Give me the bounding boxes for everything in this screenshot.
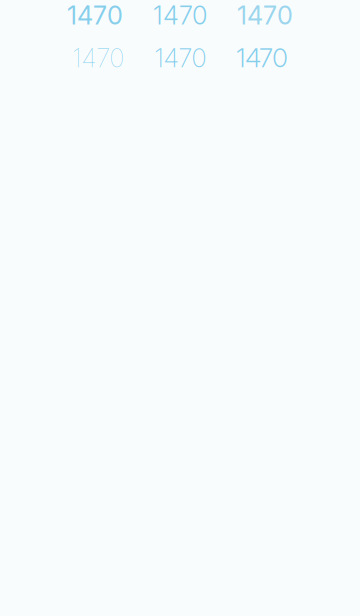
- staticText: 1470: [237, 0, 293, 31]
- staticText: 1470: [153, 0, 207, 31]
- staticText: 1470: [67, 0, 123, 31]
- staticText: 1470: [154, 43, 206, 73]
- staticText: 1470: [72, 43, 124, 73]
- staticText: 1470: [236, 43, 287, 73]
